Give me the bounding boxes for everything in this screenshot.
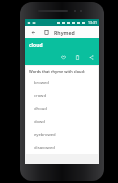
button[interactable]: Copy [73,53,82,62]
staticText: dhoud [34,106,47,112]
staticText: eyebrowed [34,132,56,138]
button[interactable]: Back [28,27,38,37]
button[interactable]: dowd [26,115,98,128]
staticText: Words that rhyme with cloud: [29,69,86,74]
staticText: cloud [29,42,43,49]
button[interactable]: Dictionary [41,27,51,37]
staticText: 13:31 [88,20,97,25]
staticText: Rhymed [54,29,75,36]
button[interactable]: Favorite [59,53,68,62]
staticText: dowd [34,119,45,125]
staticText: crowd [34,93,46,99]
button[interactable]: browed [26,76,98,89]
button[interactable]: eyebrowed [26,128,98,141]
button[interactable]: crowd [26,89,98,102]
button[interactable]: Share [87,53,96,62]
button[interactable]: dhoud [26,102,98,115]
staticText: browed [34,80,49,86]
staticText: disavowed [34,145,55,151]
button[interactable]: disavowed [26,141,98,154]
